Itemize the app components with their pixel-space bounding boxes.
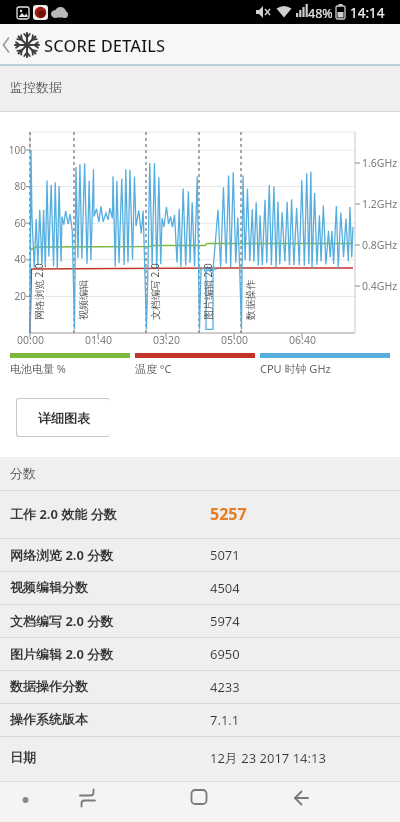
staticText: 1.2GHz <box>362 197 398 211</box>
staticText: 60 <box>14 216 26 230</box>
staticText: 12月 23 2017 14:13 <box>210 749 326 767</box>
staticText: 日期 <box>10 749 36 765</box>
staticText: 03:20 <box>153 333 180 347</box>
staticText: 视频编辑分数 <box>10 579 88 595</box>
staticText: 48% <box>308 5 333 22</box>
staticText: 20 <box>14 289 26 303</box>
staticText: 4233 <box>210 678 240 696</box>
staticText: 5071 <box>210 546 240 564</box>
staticText: 分数 <box>10 465 36 481</box>
staticText: 图片编辑 2.0 <box>201 263 215 320</box>
staticText: 网络浏览 2.0 分数 <box>10 546 114 564</box>
staticText: 100 <box>8 143 26 157</box>
staticText: CPU 时钟 GHz <box>260 361 331 376</box>
staticText: 文档编写 2.0 <box>148 263 162 320</box>
staticText: 00:00 <box>17 333 44 347</box>
staticText: 详细图表 <box>38 410 90 426</box>
button[interactable] <box>171 781 227 822</box>
staticText: 06:40 <box>289 333 316 347</box>
staticText: 操作系统版本 <box>10 711 88 727</box>
staticText: 7.1.1 <box>210 711 240 729</box>
staticText: 5257 <box>210 503 247 525</box>
staticText: 温度 °C <box>135 361 172 376</box>
staticText: 05:00 <box>221 333 248 347</box>
staticText: SCORE DETAILS <box>44 34 166 56</box>
staticText: 数据操作分数 <box>10 678 88 694</box>
staticText: 监控数据 <box>10 79 62 95</box>
staticText: 5974 <box>210 612 240 630</box>
staticText: 80 <box>14 179 26 193</box>
staticText: 14:14 <box>350 4 385 22</box>
button[interactable]: 详细图表 <box>17 399 110 436</box>
staticText: 4504 <box>210 579 240 597</box>
button[interactable] <box>0 24 44 64</box>
staticText: 01:40 <box>85 333 112 347</box>
staticText: 数据操作 <box>244 280 257 320</box>
staticText: 网络浏览 2.0 <box>32 263 46 320</box>
staticText: 工作 2.0 效能 分数 <box>10 505 117 523</box>
staticText: 文档编写 2.0 分数 <box>10 612 114 630</box>
button[interactable] <box>273 781 329 822</box>
staticText: 6950 <box>210 645 240 663</box>
staticText: 0.8GHz <box>362 238 398 252</box>
staticText: 1.6GHz <box>362 156 398 170</box>
staticText: 图片编辑 2.0 分数 <box>10 645 114 663</box>
staticText: 0.4GHz <box>362 279 398 293</box>
staticText: 40 <box>14 252 26 266</box>
staticText: 视频编辑 <box>77 280 90 320</box>
button[interactable] <box>60 781 116 822</box>
staticText: 电池电量 % <box>10 361 67 376</box>
